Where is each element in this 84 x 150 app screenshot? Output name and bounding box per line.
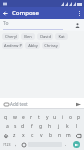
staticText: ,: [15, 141, 17, 148]
staticText: Chrissy: [44, 43, 58, 48]
button[interactable]: Attach: [2, 100, 10, 108]
button[interactable]: v: [37, 131, 46, 140]
staticText: m: [66, 132, 71, 139]
staticText: v: [40, 132, 43, 139]
staticText: a: [6, 123, 9, 130]
button[interactable]: d: [19, 122, 27, 131]
button[interactable]: j: [54, 122, 63, 131]
staticText: r: [30, 114, 33, 121]
staticText: Compose: [12, 9, 39, 17]
button[interactable]: g: [36, 122, 45, 131]
staticText: To: [3, 20, 9, 27]
button[interactable]: ?123: [1, 140, 12, 149]
button[interactable]: t: [35, 113, 43, 122]
button[interactable]: Add contact: [73, 21, 82, 30]
staticText: Abby: [28, 43, 38, 48]
button[interactable]: Backspace: [73, 131, 83, 140]
button[interactable]: Emoji: [20, 140, 28, 149]
button[interactable]: b: [46, 131, 55, 140]
button[interactable]: p: [75, 113, 83, 122]
button[interactable]: To: [3, 20, 63, 30]
button[interactable]: Ben: [21, 33, 35, 40]
button[interactable]: u: [51, 113, 59, 122]
button[interactable]: a: [3, 122, 11, 131]
button[interactable]: Andrew P: [2, 42, 23, 49]
button[interactable]: .: [62, 140, 70, 149]
staticText: d: [21, 123, 25, 130]
staticText: k: [66, 123, 69, 130]
staticText: Andrew P: [4, 43, 22, 48]
button[interactable]: f: [27, 122, 36, 131]
button[interactable]: k: [63, 122, 72, 131]
button[interactable]: h: [45, 122, 54, 131]
staticText: x: [22, 132, 25, 139]
staticText: b: [49, 132, 53, 139]
staticText: q: [4, 114, 8, 121]
button[interactable]: Send: [74, 100, 82, 108]
button[interactable]: w: [10, 113, 19, 122]
button[interactable]: ,: [12, 140, 20, 149]
staticText: y: [46, 114, 49, 121]
staticText: i: [62, 114, 64, 121]
staticText: Cheryl: [5, 34, 17, 39]
button[interactable]: Chrissy: [42, 42, 60, 49]
staticText: l: [76, 123, 78, 130]
button[interactable]: n: [55, 131, 64, 140]
staticText: u: [53, 114, 57, 121]
button[interactable]: David: [37, 33, 53, 40]
button[interactable]: Cheryl: [2, 33, 19, 40]
button[interactable]: Abby: [25, 42, 40, 49]
staticText: ?123: [3, 142, 11, 147]
staticText: Ben: [24, 34, 32, 39]
button[interactable]: c: [28, 131, 37, 140]
staticText: Kat: [58, 34, 65, 39]
button[interactable]: e: [19, 113, 27, 122]
staticText: t: [38, 114, 40, 121]
staticText: David: [40, 34, 51, 39]
staticText: z: [13, 132, 16, 139]
button[interactable]: i: [59, 113, 67, 122]
button[interactable]: r: [27, 113, 35, 122]
button[interactable]: z: [10, 131, 19, 140]
button[interactable]: Shift: [1, 131, 10, 140]
staticText: .: [65, 141, 67, 148]
staticText: w: [13, 114, 17, 121]
staticText: s: [14, 123, 17, 130]
staticText: o: [69, 114, 73, 121]
staticText: j: [58, 123, 60, 130]
button[interactable]: y: [43, 113, 51, 122]
button[interactable]: Send message: [70, 140, 83, 149]
staticText: Add text: [10, 101, 28, 107]
staticText: g: [39, 123, 43, 130]
button[interactable]: Kat: [55, 33, 68, 40]
button[interactable]: x: [19, 131, 28, 140]
staticText: c: [31, 132, 34, 139]
staticText: n: [58, 132, 62, 139]
button[interactable]: Back: [0, 8, 10, 18]
staticText: e: [22, 114, 25, 121]
staticText: p: [77, 114, 81, 121]
button[interactable]: l: [72, 122, 81, 131]
staticText: h: [48, 123, 52, 130]
staticText: f: [31, 123, 33, 130]
button[interactable]: m: [64, 131, 73, 140]
button[interactable]: s: [11, 122, 19, 131]
button[interactable]: o: [67, 113, 75, 122]
button[interactable]: q: [1, 113, 10, 122]
button[interactable]: More options: [74, 8, 84, 18]
